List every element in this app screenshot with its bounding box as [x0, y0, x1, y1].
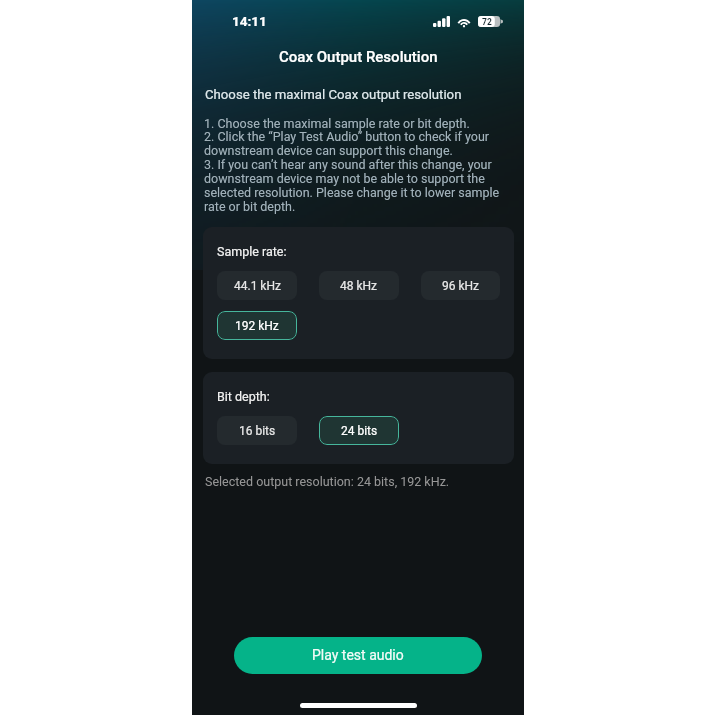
button[interactable]: 192 kHz [217, 311, 297, 340]
button[interactable]: 16 bits [217, 416, 297, 445]
staticText: 96 kHz [442, 279, 480, 293]
other: Cellular signal [433, 16, 450, 27]
staticText: Choose the maximal Coax output resolutio… [205, 87, 462, 102]
button[interactable]: 48 kHz [319, 271, 399, 300]
staticText: 16 bits [239, 424, 276, 438]
staticText: Selected output resolution: 24 bits, 192… [205, 474, 450, 489]
staticText: Sample rate: [217, 244, 287, 259]
other: Battery 72 percent [478, 16, 502, 27]
staticText: 48 kHz [340, 279, 378, 293]
button[interactable]: Play test audio [234, 637, 482, 674]
button[interactable]: 24 bits [319, 416, 399, 445]
staticText: 44.1 kHz [234, 279, 281, 293]
staticText: Bit depth: [217, 389, 270, 404]
staticText: 192 kHz [235, 319, 279, 333]
button[interactable]: 44.1 kHz [217, 271, 297, 300]
button[interactable]: 96 kHz [421, 271, 500, 300]
staticText: Coax Output Resolution [279, 48, 438, 66]
staticText: 1. Choose the maximal sample rate or bit… [204, 116, 500, 214]
staticText: 14:11 [232, 13, 267, 29]
staticText: Play test audio [312, 647, 404, 663]
staticText: 72 [482, 17, 492, 27]
other: Wi-Fi [457, 16, 471, 27]
staticText: 24 bits [341, 424, 378, 438]
